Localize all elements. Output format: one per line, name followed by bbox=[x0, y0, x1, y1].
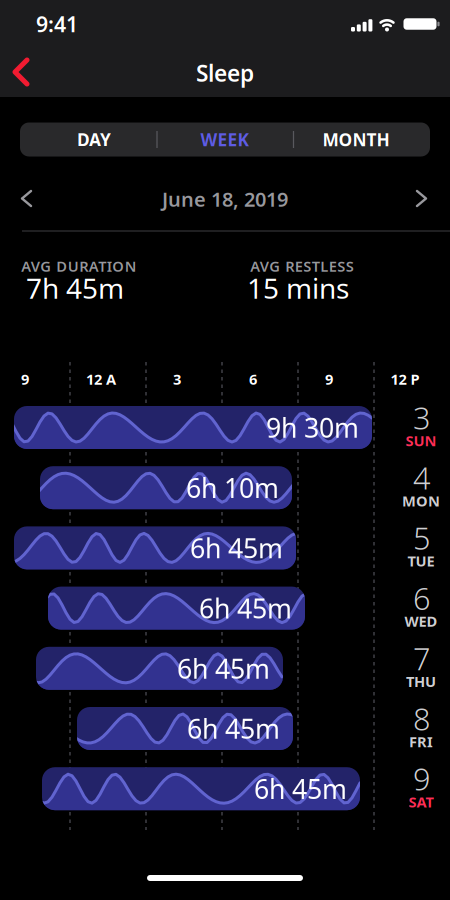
staticText: 6h 10m bbox=[186, 470, 279, 505]
staticText: 15 mins bbox=[247, 269, 349, 307]
staticText: 9 bbox=[413, 758, 431, 799]
staticText: 6h 45m bbox=[199, 590, 292, 626]
staticText: WEEK bbox=[200, 128, 249, 151]
staticText: SUN bbox=[405, 431, 436, 450]
staticText: AVG DURATION bbox=[21, 256, 137, 276]
button[interactable] bbox=[12, 59, 29, 85]
staticText: FRI bbox=[409, 732, 433, 751]
staticText: 6h 45m bbox=[177, 651, 270, 686]
staticText: 9 bbox=[325, 369, 333, 389]
button[interactable]: WEEK bbox=[160, 122, 290, 156]
staticText: 6h 45m bbox=[254, 771, 347, 806]
staticText: 9:41 bbox=[36, 10, 78, 38]
staticText: MONTH bbox=[322, 128, 389, 151]
staticText: 12 A bbox=[86, 369, 116, 389]
staticText: WED bbox=[404, 611, 437, 631]
button[interactable]: DAY bbox=[29, 122, 159, 156]
staticText: 4 bbox=[413, 457, 431, 498]
staticText: THU bbox=[406, 672, 436, 691]
staticText: DAY bbox=[77, 128, 111, 151]
staticText: 3 bbox=[413, 397, 431, 438]
staticText: June 18, 2019 bbox=[162, 186, 288, 212]
staticText: 9 bbox=[21, 369, 29, 389]
staticText: Sleep bbox=[196, 58, 254, 88]
staticText: 7h 45m bbox=[26, 269, 124, 307]
staticText: SAT bbox=[408, 792, 433, 811]
staticText: TUE bbox=[407, 551, 434, 571]
staticText: 12 P bbox=[390, 369, 419, 389]
staticText: 5 bbox=[413, 517, 431, 558]
staticText: 7 bbox=[413, 638, 431, 679]
button[interactable]: MONTH bbox=[291, 122, 421, 156]
staticText: 6h 45m bbox=[190, 530, 283, 566]
button[interactable] bbox=[16, 186, 40, 214]
staticText: 3 bbox=[173, 369, 181, 389]
staticText: 9h 30m bbox=[266, 410, 359, 445]
staticText: 8 bbox=[413, 698, 431, 739]
staticText: MON bbox=[402, 491, 440, 510]
staticText: AVG RESTLESS bbox=[250, 256, 354, 276]
staticText: 6 bbox=[249, 369, 257, 389]
staticText: 6 bbox=[413, 578, 431, 618]
button[interactable] bbox=[411, 186, 435, 214]
staticText: 6h 45m bbox=[187, 711, 280, 746]
